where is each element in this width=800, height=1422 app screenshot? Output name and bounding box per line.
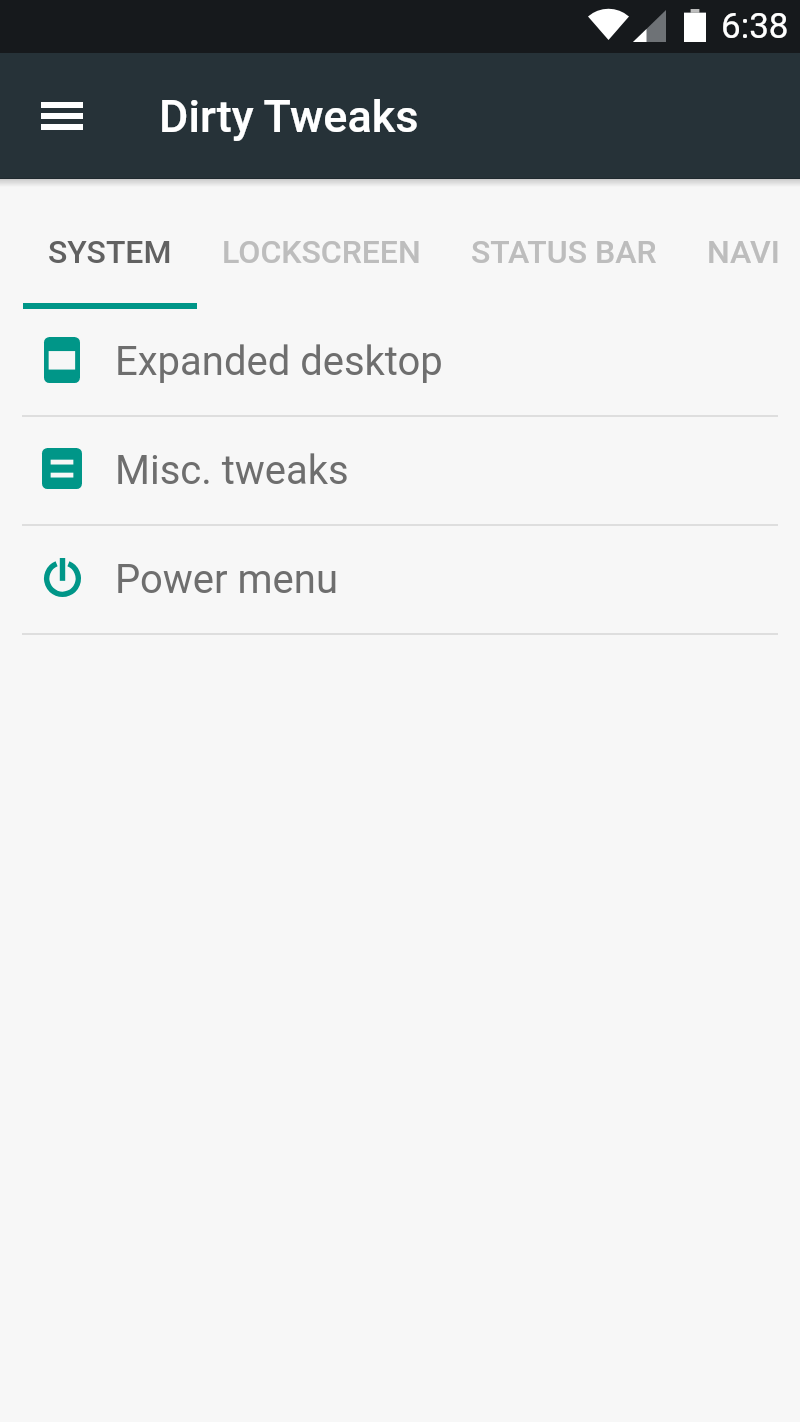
button[interactable]: Expanded desktop <box>0 308 800 417</box>
button[interactable]: Open navigation drawer <box>30 84 94 148</box>
staticText: SYSTEM <box>48 233 172 271</box>
staticText: STATUS BAR <box>471 233 657 271</box>
button[interactable]: Power menu <box>0 526 800 635</box>
staticText: NAVI <box>707 233 780 271</box>
button[interactable]: SYSTEM <box>23 201 197 309</box>
staticText: LOCKSCREEN <box>222 233 421 271</box>
button[interactable]: STATUS BAR <box>446 201 682 309</box>
staticText: 6:38 <box>721 6 789 47</box>
button[interactable]: Misc. tweaks <box>0 417 800 526</box>
staticText: Misc. tweaks <box>115 447 349 494</box>
button[interactable]: NAVI <box>682 201 800 309</box>
staticText: Dirty Tweaks <box>159 90 419 143</box>
staticText: Expanded desktop <box>115 338 443 385</box>
staticText: Power menu <box>115 556 338 603</box>
button[interactable]: LOCKSCREEN <box>197 201 446 309</box>
